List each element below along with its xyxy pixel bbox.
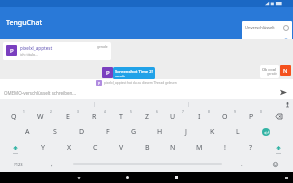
staticText: B	[145, 143, 150, 153]
staticText: X	[67, 143, 72, 153]
staticText: 5	[130, 110, 132, 114]
button[interactable]: ,	[37, 156, 67, 172]
staticText: OMEMO-verschlüsselt schreiben...	[4, 90, 76, 96]
staticText: H	[157, 127, 163, 137]
staticText: OMEMO	[245, 38, 261, 43]
button[interactable]: N	[160, 140, 186, 156]
button[interactable]: X	[56, 140, 82, 156]
staticText: N	[283, 67, 288, 75]
button[interactable]: Enter	[251, 124, 280, 140]
staticText: 1	[23, 110, 25, 114]
button[interactable]: B	[134, 140, 160, 156]
button[interactable]: Ok cool	[260, 65, 279, 78]
button[interactable]: OMEMO-verschlüsselt schreiben...	[4, 90, 278, 96]
staticText: O	[222, 112, 228, 122]
button[interactable]: Shift right	[264, 140, 293, 156]
staticText: 7	[182, 110, 184, 114]
button[interactable]: OMEMO	[242, 34, 292, 47]
button[interactable]: Z	[134, 109, 160, 124]
staticText: A	[25, 127, 30, 137]
button[interactable]: W	[27, 109, 54, 124]
staticText: gerade	[267, 72, 277, 76]
staticText: Q	[11, 112, 17, 122]
button[interactable]: Q	[0, 109, 27, 124]
staticText: E	[66, 112, 70, 122]
staticText: P	[10, 47, 14, 55]
button[interactable]: A	[14, 124, 41, 140]
staticText: ?123	[14, 162, 23, 167]
staticText: ich: titulo...	[20, 52, 39, 57]
staticText: 0	[260, 110, 262, 114]
button[interactable]: J	[173, 124, 199, 140]
button[interactable]: K	[199, 124, 225, 140]
staticText: P	[98, 81, 101, 86]
staticText: N	[170, 143, 176, 153]
staticText: !	[224, 143, 226, 153]
staticText: gerade	[115, 75, 125, 77]
button[interactable]: F	[95, 124, 121, 140]
button[interactable]: ?123	[0, 156, 37, 172]
button[interactable]: E	[54, 109, 81, 124]
button[interactable]: Voice input	[282, 99, 292, 109]
staticText: V	[119, 143, 124, 153]
button[interactable]: Screenshot Time 2!	[113, 67, 155, 79]
staticText: I	[198, 112, 201, 122]
staticText: M	[196, 143, 203, 153]
staticText: Z	[145, 112, 150, 122]
button[interactable]: Keyboard	[281, 172, 292, 183]
button[interactable]: Emoji	[257, 156, 293, 172]
button[interactable]: !	[212, 140, 238, 156]
button[interactable]: R	[81, 109, 108, 124]
staticText: 4	[104, 110, 106, 114]
staticText: pixelxl_apptest	[20, 45, 53, 51]
button[interactable]: Y	[30, 140, 56, 156]
button[interactable]: ?	[238, 140, 264, 156]
staticText: Ok cool	[262, 67, 277, 72]
staticText: P	[106, 69, 110, 77]
button[interactable]: Attach	[265, 18, 276, 29]
button[interactable]: More options	[276, 18, 287, 29]
button[interactable]: S	[41, 124, 68, 140]
staticText: Y	[41, 143, 45, 153]
staticText: pixelxl_apptest hat du zu diesem Thread …	[104, 81, 177, 85]
staticText: 3	[77, 110, 79, 114]
staticText: Screenshot Time 2!	[115, 69, 153, 75]
button[interactable]: L	[225, 124, 251, 140]
button[interactable]: Home	[122, 172, 133, 183]
button[interactable]: Send	[278, 87, 289, 98]
button[interactable]: Backspace	[264, 109, 293, 124]
button[interactable]: Recent apps	[171, 172, 182, 183]
staticText: T	[119, 112, 123, 122]
staticText: ,	[51, 160, 53, 168]
button[interactable]: T	[108, 109, 134, 124]
staticText: K	[210, 127, 215, 137]
staticText: gerade	[97, 45, 108, 49]
staticText: R	[92, 112, 97, 122]
staticText: W	[37, 112, 44, 122]
button[interactable]: D	[68, 124, 95, 140]
button[interactable]: G	[121, 124, 147, 140]
button[interactable]: P	[238, 109, 264, 124]
button[interactable]: Encryption	[254, 18, 265, 29]
button[interactable]: Space	[67, 156, 227, 172]
button[interactable]: Shift	[0, 140, 30, 156]
staticText: 9	[234, 110, 236, 114]
button[interactable]: M	[186, 140, 212, 156]
button[interactable]: H	[147, 124, 173, 140]
button[interactable]: P	[3, 42, 111, 60]
staticText: 2	[50, 110, 52, 114]
button[interactable]: C	[82, 140, 108, 156]
staticText: Unverschlüsselt	[245, 25, 275, 30]
button[interactable]: Back	[73, 172, 84, 183]
staticText: P	[249, 112, 254, 122]
button[interactable]: Unverschlüsselt	[242, 21, 292, 34]
button[interactable]: Add contact	[243, 18, 254, 29]
button[interactable]: V	[108, 140, 134, 156]
button[interactable]: O	[212, 109, 238, 124]
button[interactable]: I	[186, 109, 212, 124]
staticText: ?	[249, 143, 253, 153]
staticText: F	[106, 127, 110, 137]
staticText: .	[241, 160, 243, 168]
button[interactable]: U	[160, 109, 186, 124]
